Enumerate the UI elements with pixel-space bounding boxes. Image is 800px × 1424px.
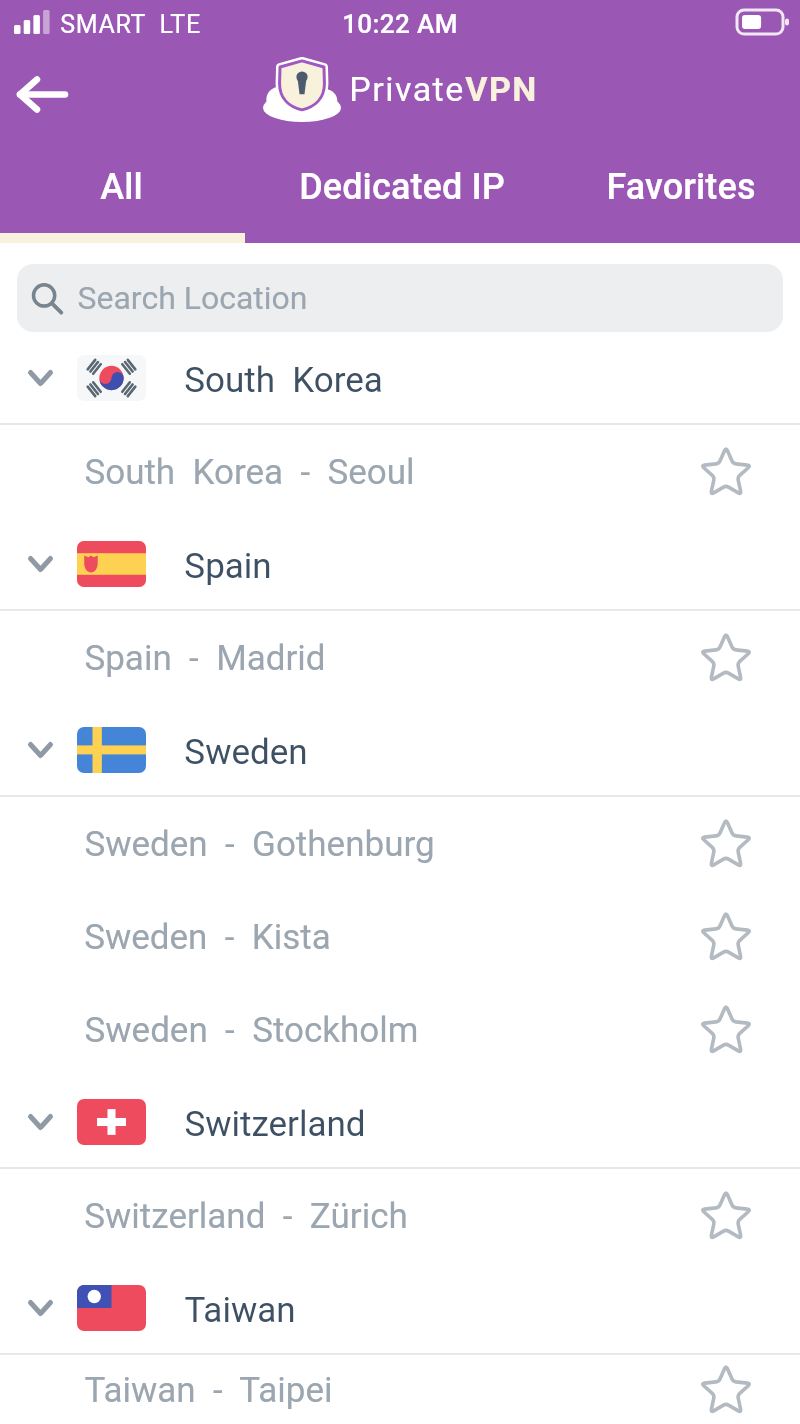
- button[interactable]: Taiwan: [0, 1262, 800, 1355]
- button[interactable]: Favorite: [679, 1355, 772, 1424]
- staticText: Switzerland - Zürich: [84, 1196, 408, 1237]
- button[interactable]: Sweden: [0, 704, 800, 797]
- staticText: Spain - Madrid: [84, 638, 326, 679]
- button[interactable]: Favorite: [679, 890, 772, 983]
- button[interactable]: Sweden - Stockholm: [0, 983, 800, 1076]
- staticText: Spain: [184, 546, 272, 587]
- staticText: All: [100, 166, 143, 208]
- staticText: Dedicated IP: [299, 166, 505, 208]
- staticText: Sweden: [184, 732, 308, 773]
- staticText: VPN: [465, 69, 538, 109]
- button[interactable]: Sweden - Kista: [0, 890, 800, 983]
- button[interactable]: Favorite: [679, 611, 772, 704]
- staticText: Sweden - Gothenburg: [84, 824, 435, 865]
- button[interactable]: Favorite: [679, 983, 772, 1076]
- button[interactable]: Back: [0, 48, 82, 140]
- button[interactable]: Favorite: [679, 797, 772, 890]
- staticText: South Korea - Seoul: [84, 452, 415, 493]
- staticText: Taiwan - Taipei: [84, 1370, 333, 1411]
- button[interactable]: Sweden - Gothenburg: [0, 797, 800, 890]
- button[interactable]: Favorite: [679, 425, 772, 518]
- staticText: Favorites: [606, 166, 756, 208]
- button[interactable]: South Korea: [0, 332, 800, 425]
- staticText: South Korea: [184, 360, 383, 401]
- staticText: SMART LTE: [60, 10, 201, 39]
- button[interactable]: Search Location: [17, 264, 783, 332]
- staticText: Private: [349, 69, 465, 109]
- staticText: Sweden - Kista: [84, 917, 331, 958]
- staticText: Switzerland: [184, 1104, 366, 1145]
- button[interactable]: Dedicated IP: [243, 140, 561, 233]
- button[interactable]: Favorites: [561, 140, 800, 233]
- staticText: Sweden - Stockholm: [84, 1010, 419, 1051]
- button[interactable]: Taiwan - Taipei: [0, 1355, 800, 1424]
- staticText: Taiwan: [184, 1290, 296, 1331]
- button[interactable]: Switzerland - Zürich: [0, 1169, 800, 1262]
- button[interactable]: South Korea - Seoul: [0, 425, 800, 518]
- staticText: 10:22 AM: [342, 9, 458, 39]
- button[interactable]: Spain - Madrid: [0, 611, 800, 704]
- button[interactable]: Spain: [0, 518, 800, 611]
- button[interactable]: All: [0, 140, 243, 233]
- button[interactable]: Favorite: [679, 1169, 772, 1262]
- button[interactable]: Switzerland: [0, 1076, 800, 1169]
- staticText: Search Location: [77, 279, 308, 317]
